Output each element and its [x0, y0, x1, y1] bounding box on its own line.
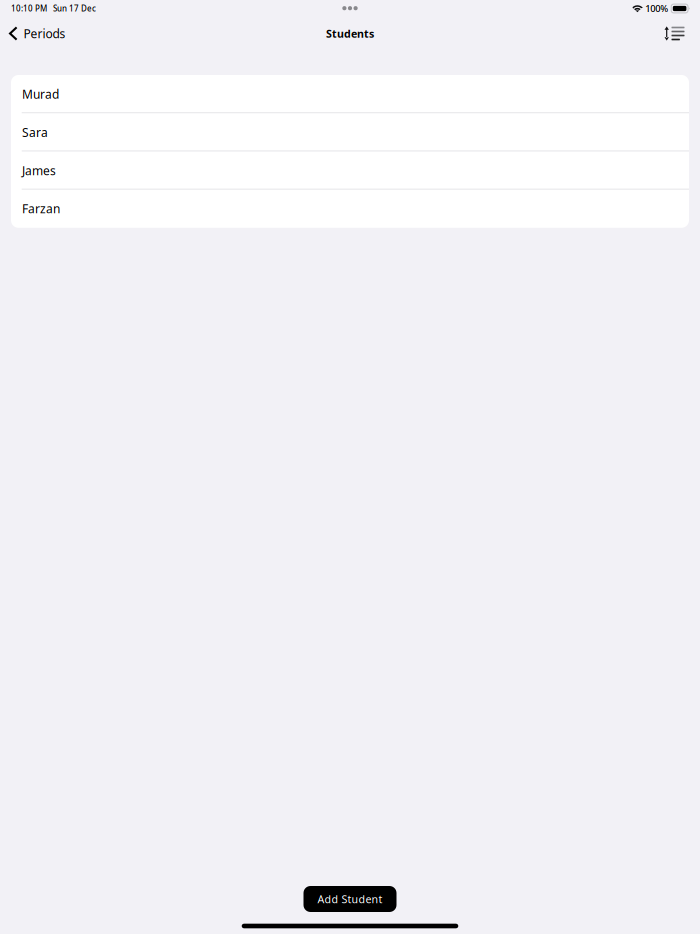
button[interactable]: James: [11, 151, 689, 190]
staticText: 100%: [645, 2, 668, 15]
button[interactable]: Add Student: [303, 886, 396, 912]
button[interactable]: Sara: [11, 113, 689, 151]
button[interactable]: Farzan: [11, 190, 689, 228]
staticText: 10:10 PM: [11, 3, 47, 14]
staticText: Farzan: [22, 201, 60, 217]
button[interactable]: Sort students: [658, 18, 691, 48]
button[interactable]: Periods: [0, 18, 74, 48]
staticText: James: [22, 162, 56, 178]
button[interactable]: Murad: [11, 75, 689, 113]
staticText: Students: [326, 26, 374, 41]
staticText: Murad: [22, 86, 59, 102]
staticText: Sara: [22, 124, 48, 140]
staticText: Periods: [24, 25, 66, 41]
staticText: Sun 17 Dec: [53, 3, 96, 14]
staticText: Add Student: [317, 892, 382, 906]
